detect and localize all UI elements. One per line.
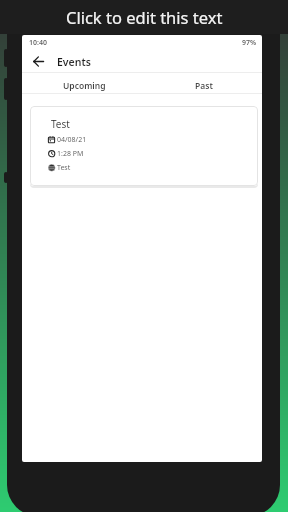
staticText: Past [195, 80, 213, 92]
staticText: 04/08/21 [57, 135, 87, 145]
staticText: Upcoming [63, 80, 106, 92]
staticText: Test [57, 163, 71, 173]
staticText: 97% [242, 38, 257, 48]
staticText: 1:28 PM [57, 149, 84, 159]
staticText: 10:40 [29, 38, 47, 48]
button[interactable] [29, 52, 48, 71]
button[interactable]: Upcoming [24, 76, 144, 96]
staticText: Click to edit this text [66, 6, 223, 28]
button[interactable]: Test [30, 106, 258, 186]
staticText: Events [57, 55, 91, 69]
staticText: Test [51, 117, 70, 131]
button[interactable]: Click to edit this text [0, 0, 288, 34]
button[interactable]: Past [144, 76, 262, 96]
